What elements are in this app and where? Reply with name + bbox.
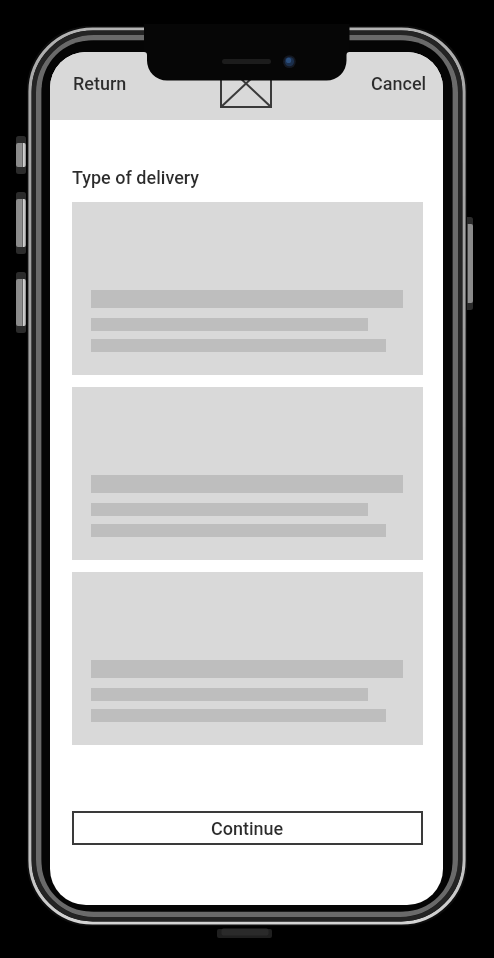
- button[interactable]: Delivery option 3: [72, 572, 423, 745]
- button[interactable]: Delivery option 1: [72, 202, 423, 375]
- button[interactable]: Delivery option 2: [72, 387, 423, 560]
- staticText: Type of delivery: [72, 167, 200, 188]
- button[interactable]: Cancel: [356, 61, 441, 106]
- button[interactable]: Continue: [72, 811, 423, 845]
- staticText: Continue: [211, 818, 284, 839]
- button[interactable]: Return: [58, 61, 142, 106]
- staticText: Cancel: [371, 73, 427, 94]
- other: Image placeholder: [221, 60, 271, 107]
- staticText: Return: [73, 73, 127, 94]
